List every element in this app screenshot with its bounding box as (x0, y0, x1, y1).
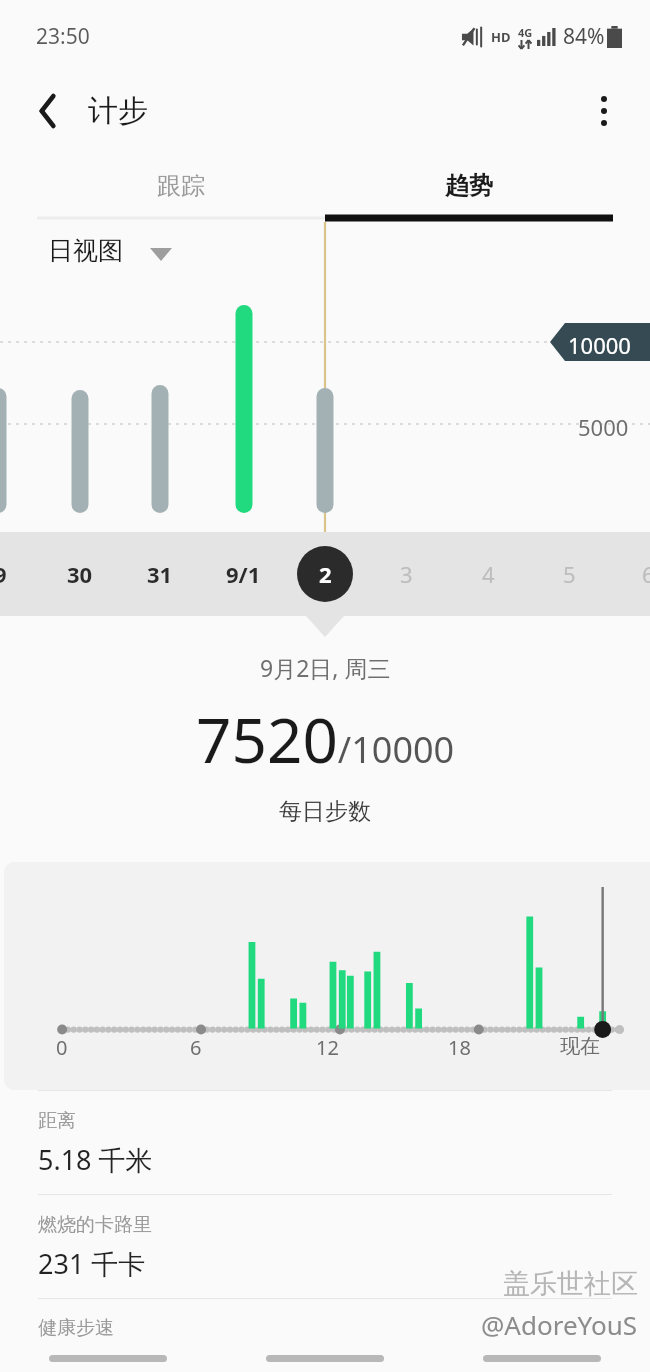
staticText: 距离 (38, 1109, 76, 1133)
staticText: HD (491, 28, 511, 46)
staticText: 18 (448, 1034, 471, 1061)
staticText: 健康步速 (38, 1316, 114, 1340)
staticText: 231 千卡 (38, 1245, 146, 1282)
staticText: 4 (482, 559, 495, 589)
button[interactable]: Navigation (266, 1355, 384, 1362)
staticText: 30 (67, 559, 93, 589)
staticText: 5 (563, 559, 576, 589)
staticText: 盖乐世社区 (503, 1267, 638, 1301)
staticText: 9/1 (226, 559, 261, 589)
button[interactable]: 9/1 (215, 532, 271, 616)
button[interactable]: 燃烧的卡路里 (0, 1194, 650, 1298)
button[interactable]: 健康步速 (0, 1298, 650, 1344)
button[interactable]: 4 (460, 532, 516, 616)
button[interactable]: 距离 (0, 1090, 650, 1194)
staticText: 6 (642, 559, 650, 589)
button[interactable]: 5 (541, 532, 597, 616)
button[interactable]: 跟踪 (37, 150, 325, 222)
button[interactable]: Back (22, 85, 74, 137)
staticText: 12 (316, 1034, 339, 1061)
staticText: 趋势 (445, 171, 493, 201)
button[interactable]: 31 (132, 532, 188, 616)
button[interactable]: 6 (620, 532, 650, 616)
button[interactable]: 3 (378, 532, 434, 616)
staticText: 31 (147, 559, 173, 589)
staticText: 跟踪 (157, 171, 205, 201)
staticText: 0 (56, 1034, 68, 1061)
staticText: 计步 (88, 92, 148, 130)
button[interactable]: 0 (4, 862, 650, 1090)
staticText: 7520/10000 (196, 697, 455, 781)
staticText: 5.18 千米 (38, 1141, 153, 1178)
staticText: 2 (319, 559, 332, 589)
staticText: 6 (190, 1034, 202, 1061)
staticText: @AdoreYouS (481, 1307, 638, 1342)
button[interactable]: Navigation (483, 1355, 601, 1362)
staticText: 9月2日, 周三 (260, 652, 391, 683)
button[interactable]: 趋势 (325, 150, 613, 222)
button[interactable]: 日视图 (0, 222, 650, 532)
staticText: 23:50 (36, 22, 90, 51)
button[interactable]: Navigation (49, 1355, 167, 1362)
button[interactable]: 2 (297, 532, 353, 616)
staticText: 5000 (578, 412, 629, 442)
button[interactable]: More options (578, 85, 630, 137)
staticText: 84% (563, 22, 605, 51)
button[interactable]: 30 (52, 532, 108, 616)
button[interactable]: 9 (0, 532, 28, 616)
staticText: 现在 (560, 1034, 600, 1059)
staticText: 4G (518, 25, 533, 40)
staticText: 10000 (568, 330, 631, 360)
staticText: 3 (400, 559, 413, 589)
staticText: 燃烧的卡路里 (38, 1213, 152, 1237)
staticText: 每日步数 (279, 797, 371, 826)
staticText: 日视图 (48, 235, 123, 266)
staticText: 9 (0, 559, 7, 589)
